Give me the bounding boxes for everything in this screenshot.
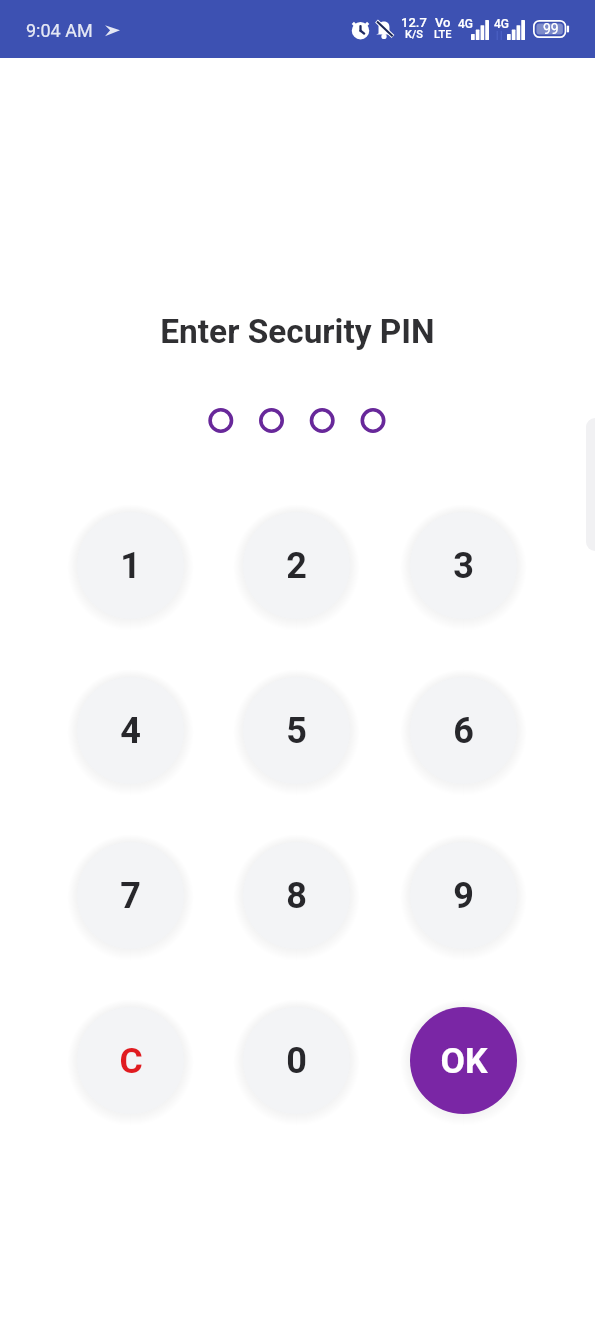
button[interactable]: 8 (243, 842, 350, 949)
button[interactable]: 5 (243, 677, 350, 784)
staticText: 4G (458, 17, 473, 31)
button[interactable]: 2 (243, 512, 350, 619)
staticText: LTE (434, 28, 452, 41)
button[interactable]: 0 (243, 1007, 350, 1114)
button[interactable]: 1 (77, 512, 184, 619)
staticText: C (119, 1040, 143, 1082)
button[interactable]: 4 (77, 677, 184, 784)
staticText: 4 (120, 710, 141, 752)
staticText: 5 (286, 710, 307, 752)
button[interactable]: Confirm PIN (410, 1007, 517, 1114)
staticText: 0 (286, 1040, 307, 1082)
staticText: 12.7 (401, 15, 427, 30)
staticText: 9 (453, 875, 474, 917)
staticText: 9:04 AM (26, 20, 93, 41)
staticText: Enter Security PIN (0, 312, 595, 351)
button[interactable]: 9 (410, 842, 517, 949)
staticText: 1 (120, 545, 141, 587)
button[interactable]: 3 (410, 512, 517, 619)
button[interactable]: Clear (77, 1007, 184, 1114)
staticText: 4G (494, 17, 509, 31)
staticText: OK (440, 1040, 488, 1082)
staticText: Vo (435, 15, 451, 30)
staticText: K/S (405, 28, 423, 41)
staticText: 7 (120, 875, 141, 917)
staticText: 6 (453, 710, 474, 752)
button[interactable]: 7 (77, 842, 184, 949)
staticText: 3 (453, 545, 474, 587)
button[interactable]: 6 (410, 677, 517, 784)
staticText: 2 (286, 545, 307, 587)
staticText: 99 (543, 21, 559, 37)
staticText: 8 (286, 875, 307, 917)
